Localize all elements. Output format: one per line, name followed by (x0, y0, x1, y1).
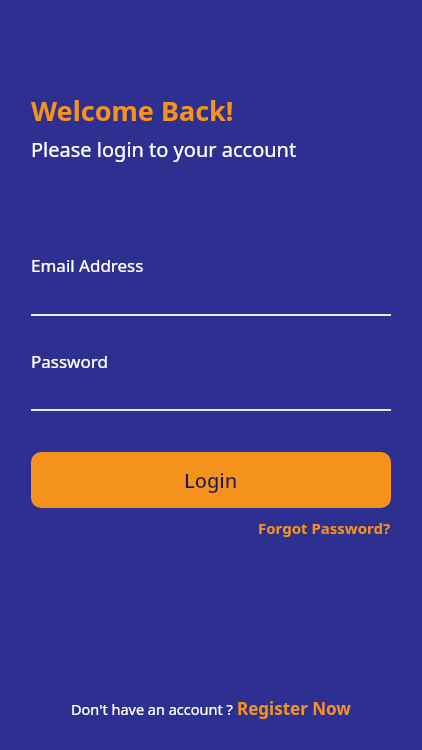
staticText: Don't have an account ? (71, 699, 237, 719)
staticText: Login (184, 467, 238, 494)
button[interactable]: Email Address (31, 247, 391, 316)
staticText: Password (31, 350, 108, 373)
button[interactable]: Password (31, 342, 391, 411)
staticText: Welcome Back! (31, 92, 234, 129)
staticText: Please login to your account (31, 136, 297, 163)
staticText: Email Address (31, 254, 144, 277)
staticText: Register Now (237, 697, 351, 720)
button[interactable]: Login (31, 452, 391, 508)
button[interactable]: Forgot Password? (258, 518, 391, 538)
button[interactable]: Don't have an account ? (0, 697, 422, 720)
